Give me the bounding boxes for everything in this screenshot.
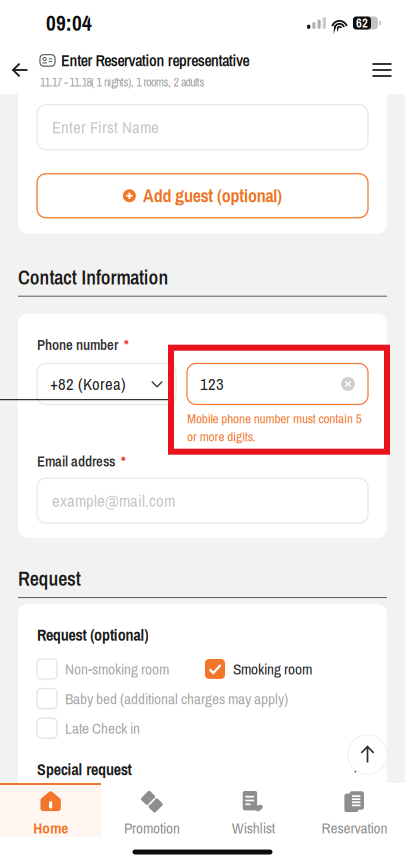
staticText: Promotion [124, 818, 180, 838]
staticText: Add guest (optional) [143, 184, 282, 208]
staticText: * [121, 451, 126, 471]
staticText: Email address [37, 451, 115, 471]
button[interactable]: +82 (Korea) [37, 363, 176, 404]
button[interactable]: Back [0, 46, 40, 94]
staticText: Request (optional) [37, 624, 148, 646]
staticText: Reservation [321, 818, 387, 838]
staticText: 123 [200, 373, 224, 395]
staticText: * [124, 335, 129, 354]
staticText: example@mail.com [52, 489, 175, 512]
button[interactable]: Menu [359, 46, 405, 94]
staticText: 62 [356, 14, 368, 32]
staticText: Request [18, 565, 81, 592]
staticText: Home [33, 818, 68, 838]
staticText: Phone number [37, 335, 118, 354]
button[interactable]: example@mail.com [37, 478, 368, 523]
button[interactable]: Smoking room [205, 659, 312, 679]
staticText: Special request [37, 759, 132, 780]
staticText: 11.17 - 11.18( 1 nights), 1 rooms, 2 adu… [40, 74, 204, 90]
staticText: Wishlist [232, 818, 275, 838]
button[interactable]: Scroll to top [347, 734, 405, 783]
button[interactable]: Baby bed (additional charges may apply) [37, 688, 288, 709]
button[interactable]: Wishlist [202, 783, 304, 837]
staticText: Baby bed (additional charges may apply) [65, 688, 288, 709]
staticText: Smoking room [233, 659, 312, 679]
button[interactable]: Special request [37, 759, 368, 780]
staticText: Enter Reservation representative [61, 50, 250, 71]
staticText: Contact Information [18, 264, 168, 291]
staticText: Late Check in [65, 718, 140, 739]
button[interactable]: Promotion [101, 783, 202, 837]
button[interactable]: Enter First Name [37, 105, 368, 150]
staticText: Non-smoking room [65, 659, 169, 679]
staticText: Mobile phone number must contain 5 or mo… [187, 409, 362, 445]
button[interactable]: Add guest (optional) [37, 174, 368, 218]
button[interactable]: 123 [187, 363, 368, 404]
button[interactable]: Reservation [304, 783, 405, 837]
staticText: First Name [37, 73, 97, 93]
staticText: +82 (Korea) [50, 373, 126, 395]
staticText: 09:04 [46, 9, 92, 37]
staticText: Enter First Name [52, 116, 159, 138]
button[interactable]: Non-smoking room [37, 659, 169, 679]
button[interactable]: Home [0, 783, 101, 837]
button[interactable]: Late Check in [37, 718, 140, 739]
